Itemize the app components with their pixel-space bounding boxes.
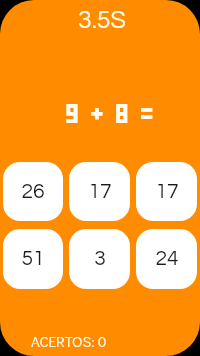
staticText: 24 [155,248,179,270]
button[interactable]: 26 [3,162,63,221]
staticText: ACERTOS: 0 [31,331,107,351]
staticText: 3 [94,248,106,270]
button[interactable]: 24 [136,229,197,289]
staticText: 17 [88,181,112,203]
button[interactable]: 3 [69,229,130,289]
staticText: 9 + 8 = [11,94,200,134]
staticText: 26 [21,181,45,203]
staticText: 3.5S [2,7,200,33]
button[interactable]: 51 [3,229,63,289]
staticText: 51 [21,248,45,270]
staticText: 17 [155,181,179,203]
button[interactable]: 17 [69,162,130,221]
button[interactable]: 17 [136,162,197,221]
